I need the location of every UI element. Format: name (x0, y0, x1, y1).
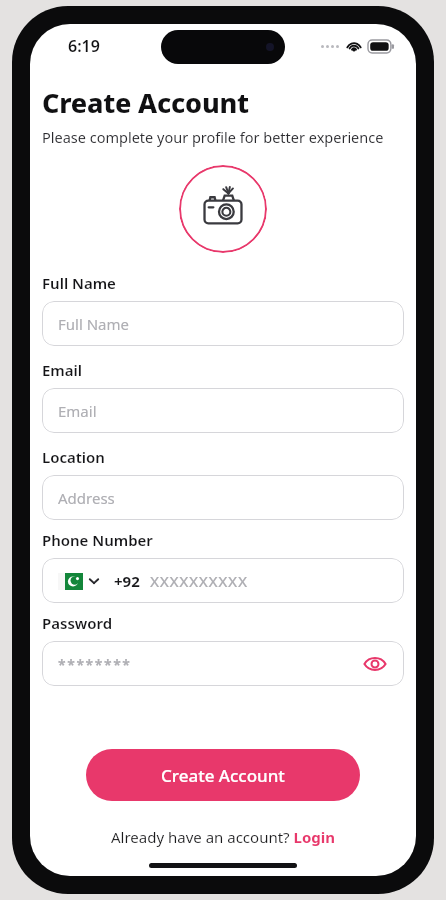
button[interactable]: Address (42, 475, 404, 520)
staticText: Full Name (58, 314, 129, 334)
staticText: +92 (114, 571, 140, 591)
staticText: Create Account (161, 764, 285, 787)
staticText: Password (42, 613, 113, 633)
staticText: Email (58, 401, 97, 421)
staticText: ******** (58, 655, 132, 674)
button[interactable]: Already have an account? Login (30, 827, 416, 847)
staticText: Already have an account? Login (111, 827, 335, 847)
button[interactable]: Add profile photo (179, 165, 267, 253)
staticText: 6:19 (68, 35, 100, 57)
staticText: Email (42, 360, 83, 380)
button[interactable]: Full Name (42, 301, 404, 346)
staticText: Full Name (42, 273, 116, 293)
button[interactable]: +92 (42, 558, 404, 603)
staticText: Location (42, 447, 105, 467)
button[interactable]: Show password (362, 651, 388, 677)
staticText: Address (58, 488, 115, 508)
button[interactable]: Create Account (86, 749, 360, 801)
button[interactable]: ******** (42, 641, 404, 686)
staticText: Please complete your profile for better … (42, 127, 384, 147)
staticText: Create Account (42, 84, 249, 121)
staticText: XXXXXXXXXX (150, 571, 248, 591)
staticText: Phone Number (42, 530, 153, 550)
button[interactable]: Email (42, 388, 404, 433)
